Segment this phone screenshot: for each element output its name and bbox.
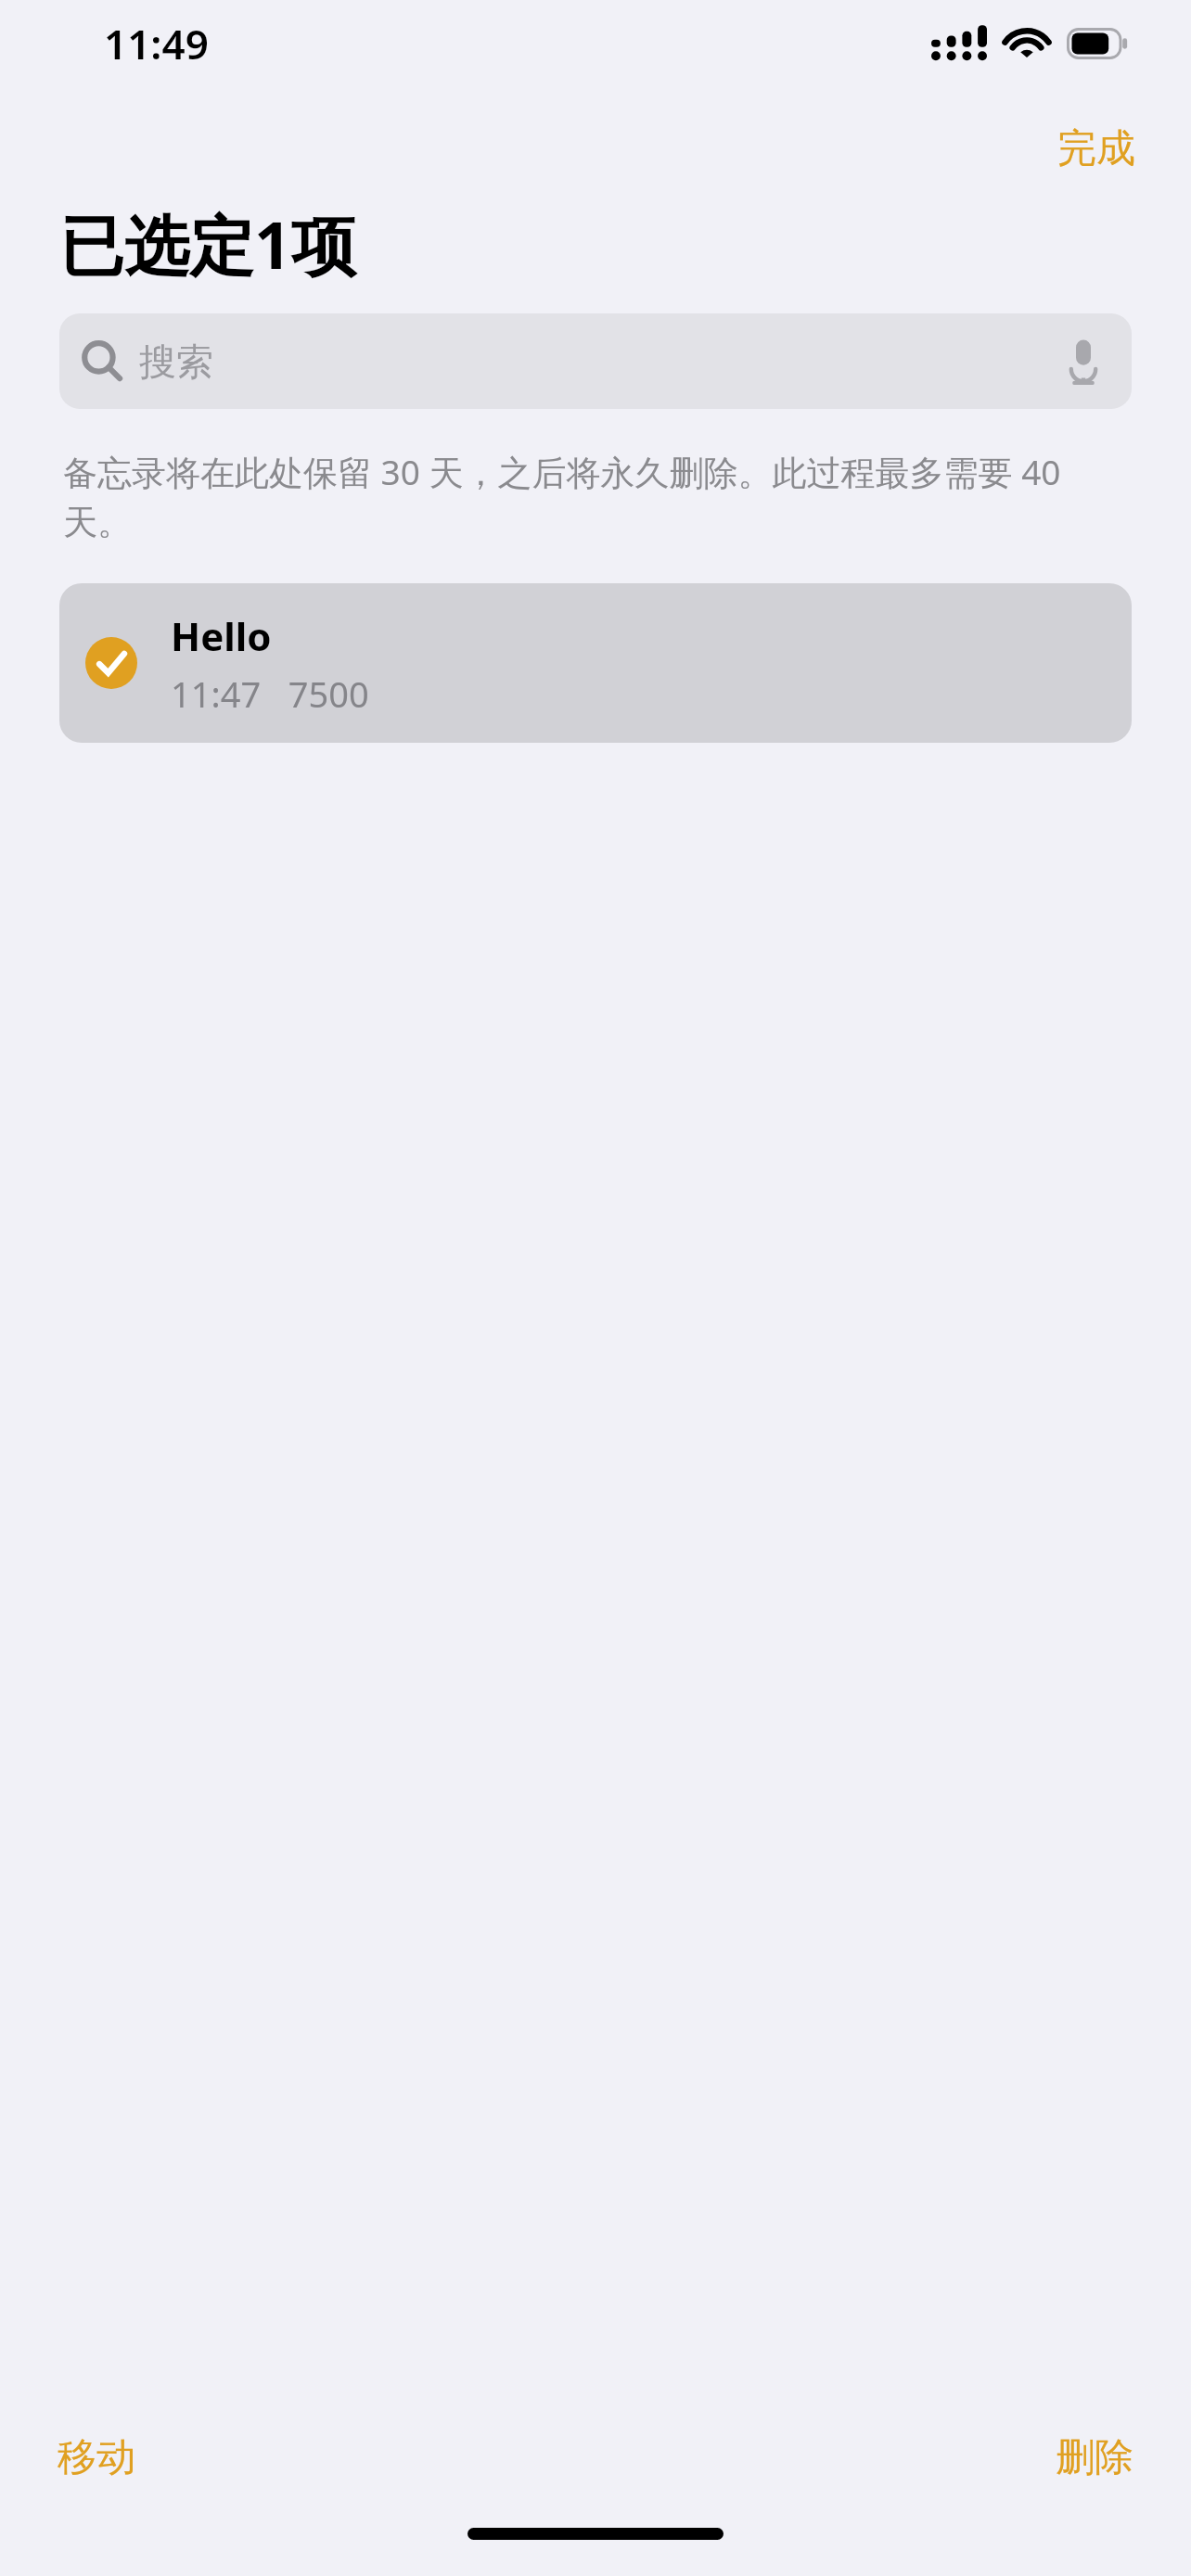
button[interactable]: Hello: [59, 583, 1132, 743]
button[interactable]: 移动: [41, 2422, 152, 2493]
button[interactable]: 完成: [1039, 115, 1154, 183]
staticText: 11:49: [104, 16, 209, 71]
staticText: 11:47 7500: [171, 670, 369, 718]
button[interactable]: 语音搜索: [1057, 336, 1109, 388]
staticText: 已选定1项: [59, 199, 357, 288]
staticText: 备忘录将在此处保留 30 天，之后将永久删除。此过程最多需要 40 天。: [63, 448, 1106, 544]
staticText: 完成: [1057, 124, 1135, 173]
staticText: Hello: [171, 609, 272, 662]
staticText: 删除: [1056, 2433, 1133, 2482]
button[interactable]: 删除: [1039, 2422, 1150, 2493]
staticText: 搜索: [139, 338, 213, 385]
staticText: 移动: [58, 2433, 135, 2482]
button[interactable]: 搜索: [59, 313, 1132, 409]
